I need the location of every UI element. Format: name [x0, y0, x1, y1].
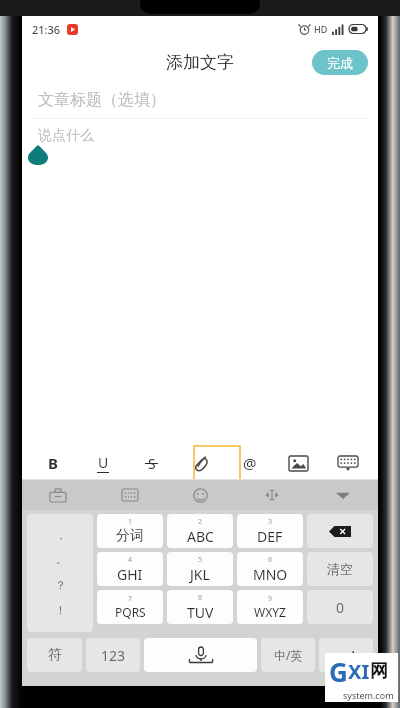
button[interactable]: Move cursor [236, 480, 307, 510]
staticText: PQRS [115, 604, 146, 620]
button[interactable]: 8 [167, 590, 233, 624]
button[interactable]: ， [27, 514, 93, 632]
staticText: ABC [187, 527, 214, 546]
button[interactable]: Underline [78, 446, 127, 480]
staticText: U [98, 453, 109, 472]
staticText: 完成 [327, 55, 353, 71]
staticText: 7 [128, 594, 133, 604]
button[interactable]: Emoji [165, 480, 236, 510]
staticText: 1 [128, 517, 133, 527]
staticText: 中/英 [274, 647, 303, 663]
staticText: 9 [268, 594, 273, 604]
button[interactable]: Strikethrough [127, 446, 176, 480]
staticText: G [329, 654, 348, 689]
button[interactable]: Enter [319, 638, 373, 672]
button[interactable]: Attach link [184, 446, 218, 480]
staticText: 6 [268, 555, 273, 565]
staticText: XI [348, 658, 370, 685]
staticText: 123 [101, 646, 126, 665]
staticText: 5 [198, 555, 203, 565]
staticText: @ [243, 453, 257, 473]
staticText: 0 [336, 598, 345, 617]
button[interactable]: 完成 [312, 50, 368, 75]
staticText: ？ [55, 578, 66, 592]
button[interactable]: 4 [97, 552, 163, 586]
staticText: MNO [253, 565, 288, 584]
button[interactable]: Keyboard layout [94, 480, 165, 510]
button[interactable]: 123 [86, 638, 140, 672]
staticText: B [48, 453, 58, 473]
button[interactable]: 1 [97, 514, 163, 548]
button[interactable]: B [28, 446, 78, 480]
staticText: ！ [55, 603, 66, 617]
staticText: ， [56, 529, 66, 542]
staticText: TUV [187, 603, 214, 622]
button[interactable]: Mention [225, 446, 274, 480]
button[interactable]: 6 [237, 552, 303, 586]
staticText: 符 [48, 646, 62, 664]
button[interactable]: 清空 [307, 552, 373, 586]
button[interactable]: Collapse [307, 480, 378, 510]
staticText: 文章标题（选填） [38, 90, 166, 110]
button[interactable]: 9 [237, 590, 303, 624]
staticText: 3 [268, 517, 273, 527]
button[interactable]: Insert image [274, 446, 323, 480]
button[interactable]: Toolbox [22, 480, 94, 510]
staticText: 说点什么 [38, 127, 94, 145]
staticText: 添加文字 [166, 52, 234, 73]
staticText: 21:36 [32, 22, 61, 37]
staticText: 。 [56, 553, 66, 566]
staticText: JKL [190, 565, 210, 584]
button[interactable]: 5 [167, 552, 233, 586]
staticText: 清空 [327, 561, 353, 577]
staticText: 网 [370, 660, 388, 683]
button[interactable]: 7 [97, 590, 163, 624]
staticText: HD [314, 23, 328, 35]
staticText: DEF [257, 527, 283, 546]
staticText: system.com [343, 689, 394, 701]
staticText: 4 [128, 555, 133, 565]
button[interactable]: 2 [167, 514, 233, 548]
button[interactable]: 中/英 [261, 638, 315, 672]
button[interactable]: Hide keyboard [323, 446, 372, 480]
staticText: 2 [198, 517, 203, 527]
button[interactable]: 3 [237, 514, 303, 548]
staticText: 8 [198, 593, 203, 603]
button[interactable]: Backspace [307, 514, 373, 548]
staticText: WXYZ [254, 604, 286, 620]
staticText: GHI [117, 565, 143, 584]
button[interactable]: 0 [307, 590, 373, 624]
staticText: S [148, 454, 156, 473]
button[interactable]: Voice input [144, 638, 257, 672]
staticText: 分词 [116, 527, 144, 545]
button[interactable]: 符 [27, 638, 82, 672]
